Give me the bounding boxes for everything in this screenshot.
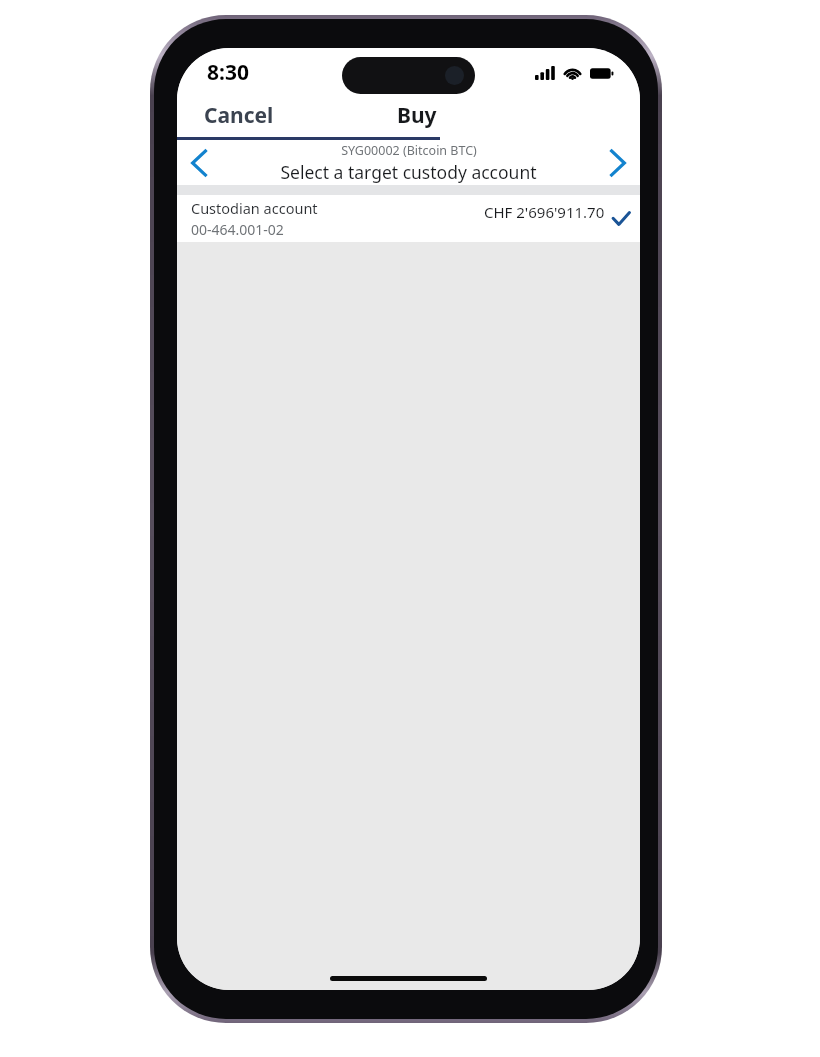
button[interactable]: Custodian account [177,195,640,242]
button[interactable]: Previous [177,142,221,184]
staticText: CHF 2'696'911.70 [484,202,605,222]
staticText: 00-464.001-02 [191,220,284,239]
staticText: 8:30 [207,58,249,87]
staticText: Select a target custody account [280,160,537,184]
button[interactable]: Cancel [177,97,288,134]
staticText: SYG00002 (Bitcoin BTC) [341,142,477,159]
button[interactable]: Buy [381,95,453,136]
button[interactable]: Next [596,142,640,184]
staticText: Buy [397,101,437,130]
staticText: Custodian account [191,198,318,218]
staticText: Cancel [204,101,274,130]
